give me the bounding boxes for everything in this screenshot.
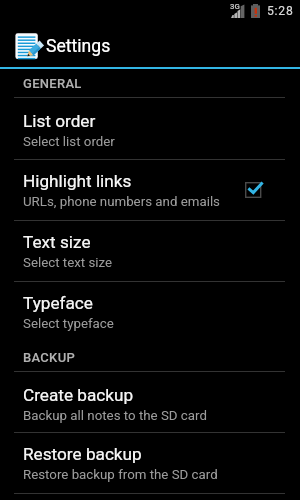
staticText: Highlight links (23, 171, 132, 191)
staticText: BACKUP (23, 350, 76, 365)
staticText: Restore backup from the SD card (23, 467, 218, 483)
button[interactable] (0, 221, 300, 282)
button[interactable] (0, 160, 300, 221)
staticText: Settings (46, 36, 111, 57)
staticText: 5:28 (267, 4, 294, 18)
staticText: Select list order (23, 134, 115, 150)
staticText: GENERAL (23, 76, 82, 91)
staticText: URLs, phone numbers and emails (23, 194, 220, 210)
button[interactable] (0, 433, 300, 494)
button[interactable]: Highlight links (245, 182, 265, 199)
button[interactable] (0, 372, 300, 433)
staticText: List order (23, 111, 96, 131)
staticText: Restore backup (23, 444, 142, 464)
button[interactable] (0, 282, 300, 343)
staticText: Select text size (23, 255, 113, 271)
staticText: Create backup (23, 385, 134, 405)
staticText: Text size (23, 232, 91, 252)
button[interactable] (0, 20, 300, 66)
staticText: Select typeface (23, 316, 114, 332)
staticText: 3G (230, 2, 240, 11)
staticText: Backup all notes to the SD card (23, 408, 207, 424)
button[interactable] (0, 98, 300, 159)
staticText: Typeface (23, 293, 93, 313)
